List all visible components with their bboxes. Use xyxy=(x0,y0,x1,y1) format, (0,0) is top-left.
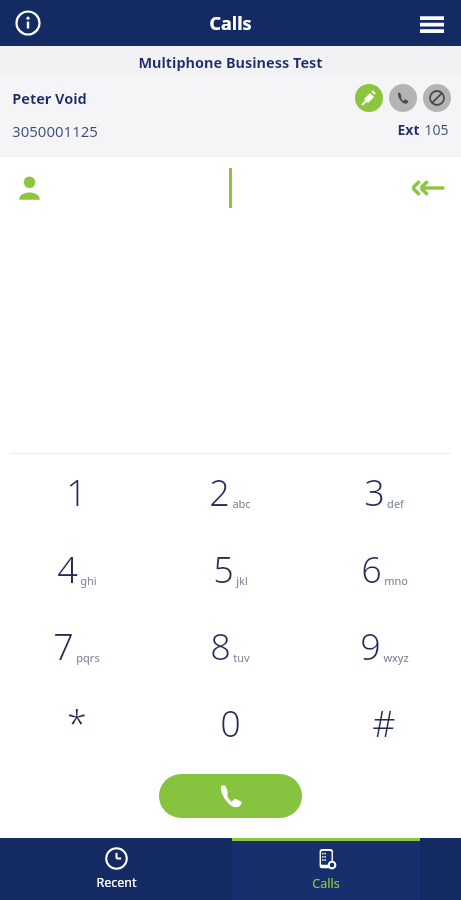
button[interactable]: Do not disturb xyxy=(423,84,451,112)
button[interactable]: Recent xyxy=(0,838,232,900)
staticText: * xyxy=(67,699,87,748)
staticText: 4 xyxy=(57,545,78,594)
staticText: Multiphone Business Test xyxy=(138,52,323,72)
staticText: tuv xyxy=(233,650,250,665)
staticText: mno xyxy=(384,573,408,588)
button[interactable]: Info xyxy=(10,5,46,41)
staticText: 6 xyxy=(361,545,382,594)
staticText: pqrs xyxy=(76,650,100,665)
button[interactable]: Backspace xyxy=(405,164,453,212)
button[interactable]: Call forwarding xyxy=(389,84,417,112)
button[interactable]: 9 xyxy=(307,608,461,685)
button[interactable]: 8 xyxy=(153,608,307,685)
button[interactable]: Calls xyxy=(232,838,420,900)
staticText: # xyxy=(372,699,396,748)
staticText: 105 xyxy=(424,120,449,139)
button[interactable]: 3 xyxy=(307,454,461,531)
staticText: Ext xyxy=(397,120,420,139)
button[interactable]: 4 xyxy=(0,531,153,608)
staticText: Calls xyxy=(209,11,252,36)
staticText: Calls xyxy=(312,875,340,892)
staticText: Recent xyxy=(96,874,137,891)
staticText: 1 xyxy=(66,468,87,517)
button[interactable]: 0 xyxy=(153,685,307,762)
staticText: def xyxy=(387,496,404,511)
staticText: 9 xyxy=(360,622,381,671)
button[interactable]: 7 xyxy=(0,608,153,685)
button[interactable]: Contacts xyxy=(8,167,50,209)
button[interactable]: Call xyxy=(159,774,302,818)
staticText: 8 xyxy=(210,622,231,671)
button[interactable]: Connected xyxy=(355,84,383,112)
button[interactable]: Menu xyxy=(413,4,451,42)
staticText: 0 xyxy=(220,699,241,748)
button[interactable]: 2 xyxy=(153,454,307,531)
staticText: 3050001125 xyxy=(12,121,98,141)
staticText: 2 xyxy=(209,468,230,517)
button[interactable]: 5 xyxy=(153,531,307,608)
staticText: abc xyxy=(232,496,251,511)
button[interactable]: # xyxy=(307,685,461,762)
staticText: wxyz xyxy=(383,650,409,665)
button[interactable]: 1 xyxy=(0,454,153,531)
staticText: 3 xyxy=(364,468,385,517)
staticText: 7 xyxy=(53,622,74,671)
button[interactable]: Peter Void xyxy=(0,78,461,157)
staticText: Peter Void xyxy=(12,88,87,108)
button[interactable]: 6 xyxy=(307,531,461,608)
staticText: ghi xyxy=(80,573,97,588)
staticText: jkl xyxy=(236,573,248,588)
staticText: 5 xyxy=(213,545,234,594)
button[interactable]: * xyxy=(0,685,153,762)
